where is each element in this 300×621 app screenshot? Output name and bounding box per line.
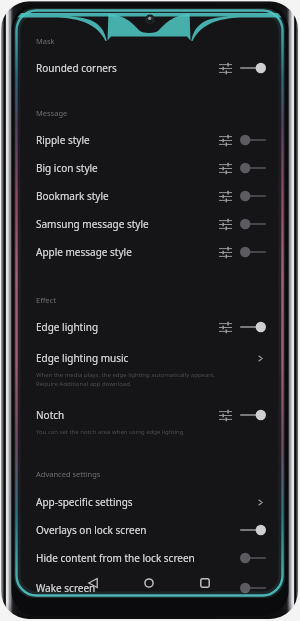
staticText: Big icon style: [36, 161, 98, 175]
button[interactable]: Apple message style: [14, 238, 285, 266]
staticText: Edge lighting: [36, 320, 99, 334]
button[interactable]: Edge lighting music: [14, 344, 285, 372]
staticText: Bookmark style: [36, 189, 109, 203]
staticText: Edge lighting music: [36, 351, 129, 365]
staticText: Apple message style: [36, 245, 132, 259]
button[interactable]: Bookmark style: [14, 182, 285, 210]
button[interactable]: Edge lighting: [14, 313, 285, 341]
button[interactable]: Recents: [193, 571, 217, 595]
staticText: Mask: [36, 36, 55, 46]
staticText: Message: [36, 108, 68, 118]
staticText: Effect: [36, 295, 56, 305]
button[interactable]: Home: [137, 571, 161, 595]
button[interactable]: Wake screen: [14, 574, 285, 598]
button[interactable]: Overlays on lock screen: [14, 516, 285, 544]
staticText: Ripple style: [36, 133, 90, 147]
staticText: When the media plays, the edge lighting …: [36, 371, 216, 388]
staticText: Hide content from the lock screen: [36, 551, 195, 565]
button[interactable]: Notch: [14, 401, 285, 429]
staticText: Notch: [36, 408, 65, 422]
button[interactable]: Rounded corners: [14, 54, 285, 82]
button[interactable]: Big icon style: [14, 154, 285, 182]
button[interactable]: App-specific settings: [14, 488, 285, 516]
staticText: You can set the notch area when using ed…: [36, 428, 184, 436]
staticText: Overlays on lock screen: [36, 523, 147, 537]
button[interactable]: Ripple style: [14, 126, 285, 154]
staticText: Advanced settings: [36, 469, 101, 479]
button[interactable]: Samsung message style: [14, 210, 285, 238]
button[interactable]: Hide content from the lock screen: [14, 544, 285, 572]
staticText: Samsung message style: [36, 217, 149, 231]
staticText: Wake screen: [36, 581, 96, 595]
staticText: App-specific settings: [36, 495, 133, 509]
button[interactable]: Back: [81, 571, 105, 595]
staticText: Rounded corners: [36, 61, 117, 75]
